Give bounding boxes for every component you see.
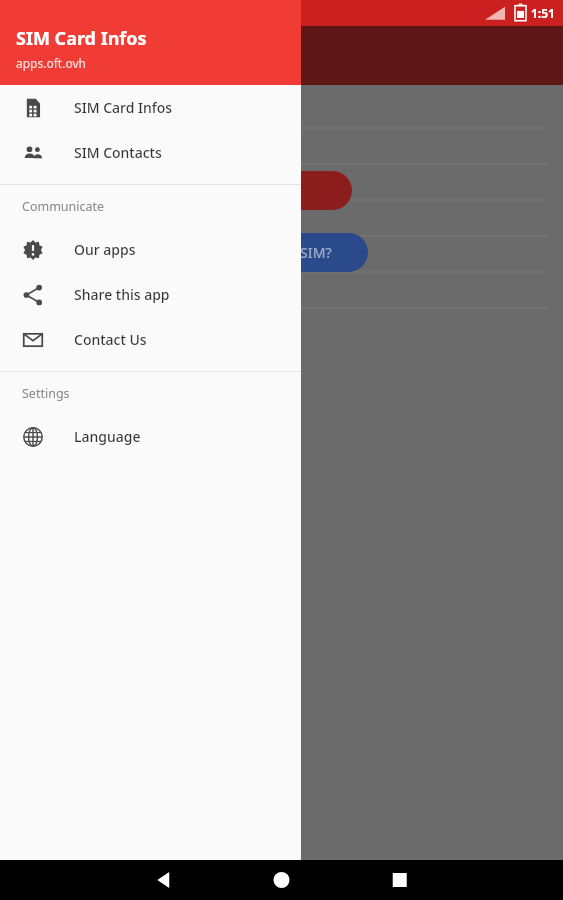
staticText: 1:51 [531,5,555,21]
staticText: apps.oft.ovh [16,55,86,71]
button[interactable]: Our apps [0,227,301,272]
button[interactable]: Language [0,414,301,459]
button[interactable]: SIM Card Infos [150,171,352,210]
button[interactable]: SIM Contacts [0,130,301,175]
staticText: Language [74,427,141,446]
staticText: SIM Card Infos [202,181,301,200]
staticText: SIM Contacts [74,143,162,162]
button[interactable]: Contact Us [0,317,301,362]
button[interactable]: What is a Virtual SIM? [150,233,368,272]
staticText: What is a Virtual SIM? [187,243,332,262]
button[interactable]: Share this app [0,272,301,317]
staticText: Contact Us [74,330,147,349]
staticText: Settings [22,385,70,402]
staticText: Share this app [74,285,170,304]
staticText: Communicate [22,198,105,215]
staticText: SIM Card Infos [16,26,147,51]
button[interactable]: SIM Card Infos [0,85,301,130]
staticText: Our apps [74,240,136,259]
staticText: SIM Card Infos [74,98,173,117]
